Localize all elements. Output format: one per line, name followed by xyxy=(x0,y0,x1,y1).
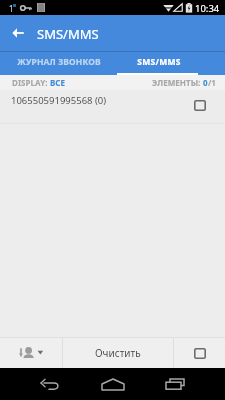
staticText: ЭЛЕМЕНТЫ: xyxy=(152,77,203,88)
button[interactable]: SMS/MMS xyxy=(117,51,201,75)
button[interactable]: Import contacts xyxy=(0,338,62,368)
staticText: SMS/MMS xyxy=(37,25,99,43)
staticText: DISPLAY: xyxy=(12,77,50,88)
button[interactable]: Очистить xyxy=(63,338,173,368)
staticText: Очистить xyxy=(95,346,141,360)
staticText: 0 xyxy=(203,77,208,88)
staticText: 1 xyxy=(9,3,14,14)
staticText: SMS/MMS xyxy=(137,56,181,68)
button[interactable]: Home xyxy=(97,372,129,396)
button[interactable]: ЖУРНАЛ ЗВОНКОВ xyxy=(0,51,117,75)
staticText: 10:34 xyxy=(195,2,220,15)
staticText: /1 xyxy=(208,77,216,88)
staticText: ВСЕ xyxy=(50,77,66,88)
button[interactable]: Recent apps xyxy=(159,372,191,396)
button[interactable]: Select all xyxy=(174,338,225,368)
button[interactable]: Back xyxy=(1,15,35,50)
button[interactable]: Back xyxy=(34,372,66,396)
staticText: ЖУРНАЛ ЗВОНКОВ xyxy=(17,56,101,68)
button[interactable]: 106550591995568 (0) xyxy=(0,90,225,124)
staticText: 106550591995568 (0) xyxy=(11,94,107,107)
